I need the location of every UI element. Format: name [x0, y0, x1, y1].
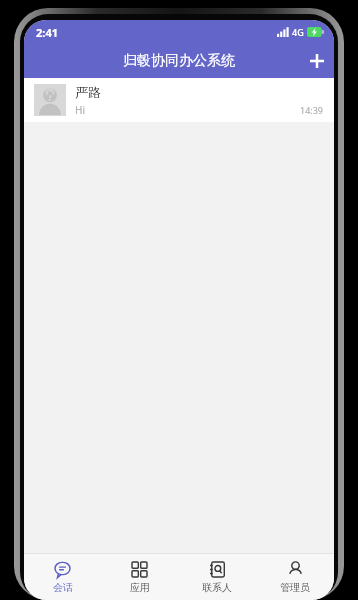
- staticText: 归毂协同办公系统: [123, 52, 235, 70]
- staticText: 4G: [292, 26, 304, 38]
- button[interactable]: 严路: [24, 78, 334, 122]
- staticText: 会话: [53, 581, 73, 594]
- button[interactable]: 会话: [24, 554, 101, 600]
- staticText: 应用: [130, 581, 150, 594]
- staticText: 管理员: [280, 581, 310, 594]
- button[interactable]: Add: [300, 44, 334, 78]
- button[interactable]: 应用: [101, 554, 178, 600]
- staticText: Hi: [75, 103, 85, 117]
- button[interactable]: 联系人: [178, 554, 256, 600]
- staticText: 14:39: [300, 104, 324, 116]
- staticText: 联系人: [202, 581, 232, 594]
- staticText: 严路: [75, 84, 101, 100]
- button[interactable]: 管理员: [256, 554, 334, 600]
- staticText: 2:41: [36, 25, 58, 40]
